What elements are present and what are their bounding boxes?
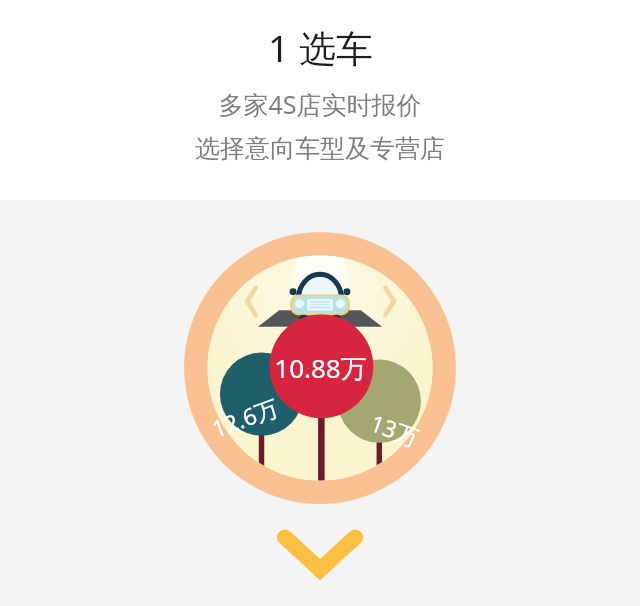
button[interactable]: Select a car model and dealer: [184, 232, 456, 504]
staticText: 13万: [366, 406, 424, 453]
staticText: 12.6万: [207, 391, 282, 444]
button[interactable]: Scroll down: [276, 528, 364, 580]
staticText: 多家4S店实时报价: [218, 87, 422, 121]
staticText: 10.88万: [274, 350, 367, 386]
staticText: 1 选车: [268, 22, 373, 73]
staticText: 选择意向车型及专营店: [195, 133, 445, 164]
